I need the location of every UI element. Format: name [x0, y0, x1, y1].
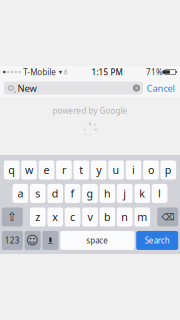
button[interactable]: j [117, 184, 133, 203]
button[interactable]: 123 [2, 231, 23, 250]
staticText: ⌫ [161, 212, 174, 222]
staticText: t [79, 163, 83, 177]
button[interactable]: Delete [157, 207, 178, 226]
button[interactable]: c [65, 207, 80, 226]
button[interactable]: e [39, 160, 54, 179]
button[interactable]: i [126, 160, 141, 179]
button[interactable]: h [100, 184, 115, 203]
button[interactable]: t [73, 160, 89, 179]
staticText: m [137, 210, 147, 224]
button[interactable]: v [82, 207, 98, 226]
staticText: powered by Google [52, 105, 127, 116]
button[interactable]: Clear text [130, 81, 143, 95]
button[interactable]: o [143, 160, 159, 179]
staticText: ☺ [26, 234, 39, 247]
staticText: q [8, 163, 15, 177]
staticText: 1:15 PM [91, 67, 122, 77]
staticText: 71% [146, 67, 163, 77]
staticText: d [52, 186, 59, 201]
staticText: u [113, 163, 120, 177]
staticText: 123 [5, 235, 20, 246]
button[interactable]: q [4, 160, 19, 179]
staticText: v [87, 210, 92, 224]
button[interactable]: Emoji [25, 231, 41, 250]
staticText: n [121, 210, 128, 224]
staticText: Search [145, 235, 170, 246]
button[interactable]: d [47, 184, 63, 203]
staticText: a [17, 186, 23, 201]
button[interactable]: r [56, 160, 72, 179]
button[interactable]: p [160, 160, 176, 179]
button[interactable]: m [134, 207, 150, 226]
button[interactable]: Shift [2, 207, 23, 226]
staticText: w [25, 163, 33, 177]
staticText: e [43, 163, 49, 177]
button[interactable]: a [13, 184, 28, 203]
staticText: k [139, 186, 145, 201]
button[interactable]: Cancel [143, 80, 178, 95]
staticText: f [71, 186, 75, 201]
button[interactable]: z [30, 207, 46, 226]
staticText: New [17, 82, 36, 94]
button[interactable]: n [117, 207, 133, 226]
staticText: 6 [64, 68, 68, 76]
staticText: T-Mobile [23, 67, 56, 77]
button[interactable]: Search [136, 231, 178, 250]
button[interactable]: b [100, 207, 115, 226]
button[interactable]: f [65, 184, 80, 203]
button[interactable]: y [91, 160, 106, 179]
staticText: space [86, 235, 108, 246]
button[interactable]: space [60, 231, 134, 250]
staticText: p [165, 163, 172, 177]
staticText: o [148, 163, 154, 177]
staticText: b [104, 210, 111, 224]
button[interactable]: Dictation [42, 231, 58, 250]
staticText: Cancel [146, 82, 174, 94]
staticText: h [104, 186, 111, 201]
staticText: y [96, 163, 101, 177]
button[interactable]: u [108, 160, 124, 179]
button[interactable]: l [152, 184, 167, 203]
button[interactable]: s [30, 184, 46, 203]
staticText: x [52, 210, 58, 224]
staticText: c [70, 210, 75, 224]
staticText: l [158, 186, 161, 201]
button[interactable]: w [21, 160, 37, 179]
staticText: j [123, 186, 126, 201]
staticText: z [35, 210, 40, 224]
staticText: ⇧ [7, 210, 17, 224]
staticText: ▾ [59, 68, 62, 76]
staticText: i [132, 163, 135, 177]
button[interactable]: g [82, 184, 98, 203]
staticText: s [35, 186, 40, 201]
staticText: g [86, 186, 93, 201]
button[interactable]: k [134, 184, 150, 203]
staticText: r [62, 163, 66, 177]
button[interactable]: x [47, 207, 63, 226]
staticText: ✕ [134, 85, 138, 91]
